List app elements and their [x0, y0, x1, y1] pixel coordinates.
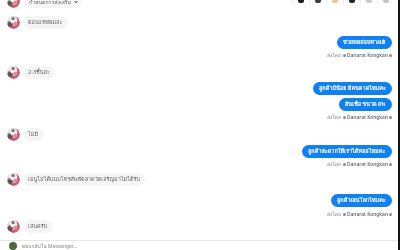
button[interactable]: กำหนดการส่งเสริม: [29, 0, 78, 6]
button[interactable]: สินเชื่อ ขนาด ถพ: [345, 100, 386, 109]
staticText: ไม่มี: [28, 130, 39, 139]
staticText: ส่งโดย: [327, 113, 343, 121]
staticText: Danarat Kongkan: [347, 161, 388, 168]
button[interactable]: Bookmark: [309, 0, 326, 6]
staticText: ลูกค้าสะดวกให้เราได้หลอไหมคะ: [308, 147, 386, 156]
button[interactable]: Profile: [326, 0, 343, 6]
staticText: ช่วยทดสอบทางเดิ: [343, 38, 386, 47]
button[interactable]: ลูกค้ามีน้อย มีคนคาดไหมคะ: [319, 84, 386, 93]
button[interactable]: ตอบแชทผมล่ะ: [7, 16, 68, 29]
staticText: Danarat Kongkan: [347, 114, 388, 121]
button[interactable]: ไม่มี: [7, 128, 44, 141]
button[interactable]: 2-3ชิ้นล่ะ: [7, 66, 55, 79]
button[interactable]: เมนูไม่ได้แนบโทรศัพท์ตลาดวัดเจริญมาไม่ได…: [7, 173, 145, 186]
button[interactable]: เล่นครับ: [7, 220, 53, 233]
staticText: กำหนดการส่งเสริม: [29, 0, 72, 6]
button[interactable]: Search: [292, 0, 309, 6]
button[interactable]: Downloads: [360, 0, 377, 6]
staticText: สินเชื่อ ขนาด ถพ: [345, 100, 386, 109]
button[interactable]: ช่วยทดสอบทางเดิ: [343, 38, 386, 47]
staticText: ส่งโดย: [327, 210, 343, 218]
button[interactable]: Inbox: [343, 0, 360, 6]
button[interactable]: ตอบกลับใน Messenger...: [0, 241, 400, 250]
button[interactable]: ลูกค้าเล่นโลกไหมคะ: [337, 196, 386, 205]
staticText: Danarat Kongkan: [347, 52, 388, 59]
button[interactable]: Menu: [377, 0, 394, 6]
staticText: ลูกค้าเล่นโลกไหมคะ: [337, 196, 386, 205]
staticText: Danarat Kongkan: [347, 211, 388, 218]
staticText: ส่งโดย: [327, 51, 343, 59]
staticText: 2-3ชิ้นล่ะ: [28, 68, 50, 77]
staticText: ส่งโดย: [327, 160, 343, 168]
staticText: ตอบแชทผมล่ะ: [28, 18, 63, 27]
staticText: เมนูไม่ได้แนบโทรศัพท์ตลาดวัดเจริญมาไม่ได…: [28, 175, 140, 184]
staticText: ตอบกลับใน Messenger...: [22, 242, 78, 250]
staticText: ลูกค้ามีน้อย มีคนคาดไหมคะ: [319, 84, 386, 93]
staticText: เล่นครับ: [28, 222, 48, 231]
button[interactable]: ลูกค้าสะดวกให้เราได้หลอไหมคะ: [308, 147, 386, 156]
